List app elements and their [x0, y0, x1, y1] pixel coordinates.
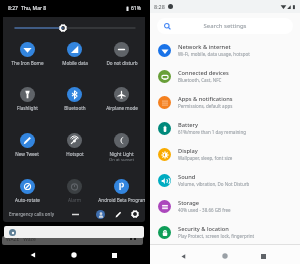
button[interactable]: Home — [66, 247, 82, 263]
staticText: WAZE Waze — [6, 236, 36, 243]
staticText: Sound — [178, 173, 196, 181]
button[interactable]: Display — [150, 141, 300, 167]
button[interactable]: Recents — [106, 247, 122, 263]
button[interactable]: Mobile data — [51, 42, 98, 72]
staticText: Airplane mode — [106, 105, 138, 111]
button[interactable]: Storage — [150, 193, 300, 219]
button[interactable]: Apps & notifications — [150, 89, 300, 115]
button[interactable]: Security & location — [150, 219, 300, 245]
button[interactable]: Alarm — [51, 179, 98, 209]
staticText: Apps & notifications — [178, 95, 233, 103]
staticText: Battery — [178, 121, 199, 129]
button[interactable]: Back — [176, 249, 190, 263]
button[interactable]: Android Beta Program — [98, 179, 145, 209]
staticText: Play Protect, screen lock, fingerprint — [178, 233, 255, 239]
staticText: 40% used - 38.66 GB free — [178, 207, 231, 213]
button[interactable]: Auto-rotate — [3, 179, 51, 209]
staticText: 61% — [131, 5, 141, 12]
staticText: Network & internet — [178, 43, 231, 51]
staticText: Storage — [178, 199, 200, 207]
button[interactable]: Settings — [130, 209, 140, 219]
button[interactable]: Collapse — [69, 208, 81, 220]
staticText: Emergency calls only — [9, 211, 54, 217]
button[interactable]: Bluetooth — [51, 87, 98, 117]
button[interactable]: Night Light — [98, 133, 145, 163]
staticText: Flashlight — [17, 105, 38, 111]
button[interactable]: Sound — [150, 167, 300, 193]
staticText: Mobile data — [62, 60, 88, 66]
button[interactable]: Battery — [150, 115, 300, 141]
staticText: Connected devices — [178, 69, 229, 77]
staticText: Night Light — [109, 151, 134, 157]
staticText: Android Beta Program — [98, 197, 145, 203]
button[interactable]: Airplane mode — [98, 87, 145, 117]
staticText: Wi-Fi, mobile, data usage, hotspot — [178, 51, 250, 57]
button[interactable]: WAZE Waze — [2, 236, 143, 245]
button[interactable]: Connected devices — [150, 63, 300, 89]
staticText: Display — [178, 147, 198, 155]
button[interactable]: Hotspot — [51, 133, 98, 163]
staticText: Volume, vibration, Do Not Disturb — [178, 181, 250, 187]
button[interactable]: Search settings — [157, 18, 293, 34]
staticText: Hotspot — [66, 151, 84, 157]
staticText: Auto-rotate — [15, 197, 40, 203]
staticText: Alarm — [68, 197, 81, 203]
button[interactable]: User — [96, 210, 105, 219]
staticText: Bluetooth — [64, 105, 86, 111]
staticText: The Iron Bome — [11, 60, 44, 66]
staticText: Search settings — [157, 22, 293, 30]
button[interactable]: Network & internet — [150, 37, 300, 63]
button[interactable]: Flashlight — [3, 87, 51, 117]
button[interactable]: Recents — [256, 249, 270, 263]
staticText: 61%/more than 1 day remaining — [178, 129, 247, 135]
staticText: 8:27 — [8, 5, 18, 12]
staticText: Bluetooth, Cast, NFC — [178, 77, 222, 83]
button[interactable]: New Tweet — [3, 133, 51, 163]
staticText: 8:28 — [154, 3, 165, 10]
staticText: Thu, Mar 8 — [21, 5, 47, 12]
button[interactable] — [4, 226, 144, 238]
button[interactable]: Do not disturb — [98, 42, 145, 72]
staticText: Security & location — [178, 225, 229, 233]
staticText: Do not disturb — [106, 60, 138, 66]
staticText: On at sunset — [109, 157, 134, 163]
button[interactable]: Back — [25, 247, 41, 263]
staticText: Permissions, default apps — [178, 103, 233, 109]
button[interactable]: Edit tiles — [113, 209, 123, 219]
button[interactable]: Home — [218, 249, 232, 263]
staticText: Wallpaper, sleep, font size — [178, 155, 233, 161]
staticText: New Tweet — [15, 151, 39, 157]
button[interactable]: The Iron Bome — [3, 42, 51, 72]
